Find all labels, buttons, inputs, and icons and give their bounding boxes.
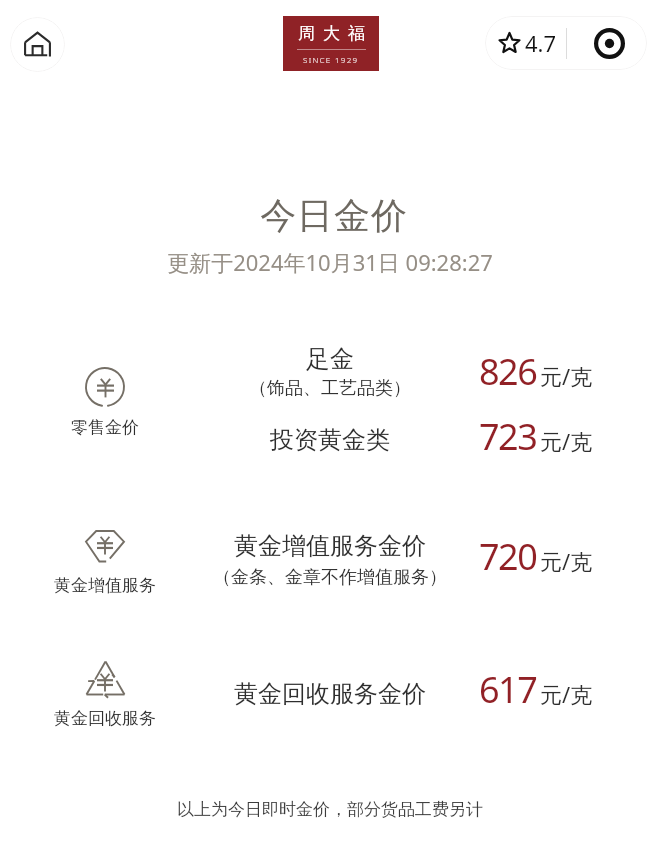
staticText: 今日金价 <box>260 193 408 238</box>
staticText: 投资黄金类 <box>270 425 390 455</box>
button[interactable]: More options <box>571 16 647 70</box>
button[interactable]: Home <box>10 17 65 72</box>
staticText: 周 <box>298 23 315 44</box>
staticText: （饰品、工艺品类） <box>249 377 411 400</box>
staticText: 元/克 <box>540 426 593 456</box>
staticText: 元/克 <box>540 546 593 576</box>
staticText: 黄金增值服务金价 <box>234 531 426 561</box>
staticText: 更新于2024年10月31日 09:28:27 <box>167 247 493 277</box>
button[interactable]: 黄金增值服务 <box>0 500 650 605</box>
staticText: 以上为今日即时金价，部分货品工费另计 <box>177 799 483 820</box>
staticText: 元/克 <box>540 679 593 709</box>
staticText: 826 <box>479 347 537 396</box>
button[interactable]: 4.7 <box>485 16 566 70</box>
button[interactable]: 黄金回收服务 <box>0 640 650 740</box>
staticText: 723 <box>479 412 537 461</box>
staticText: 零售金价 <box>71 417 139 438</box>
button[interactable]: 周 <box>283 16 379 71</box>
staticText: SINCE 1929 <box>303 54 359 65</box>
staticText: 黄金增值服务 <box>54 575 156 596</box>
button[interactable]: 零售金价 <box>0 330 650 470</box>
staticText: 黄金回收服务金价 <box>234 679 426 709</box>
staticText: 黄金回收服务 <box>54 708 156 729</box>
staticText: 足金 <box>306 344 354 374</box>
staticText: 617 <box>479 665 537 714</box>
staticText: 大 <box>323 23 340 44</box>
staticText: （金条、金章不作增值服务） <box>213 566 447 589</box>
staticText: 福 <box>348 23 365 44</box>
staticText: 720 <box>479 532 537 581</box>
staticText: 元/克 <box>540 361 593 391</box>
staticText: 4.7 <box>525 28 557 58</box>
